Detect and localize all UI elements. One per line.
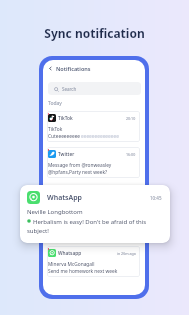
button[interactable]: Back xyxy=(43,60,145,77)
staticText: TikTok xyxy=(48,126,63,133)
staticText: Minerva McGonagall xyxy=(48,261,95,268)
staticText: @hpfans,Party next week? xyxy=(48,169,108,176)
staticText: Today xyxy=(48,100,62,107)
staticText: TikTok xyxy=(58,115,73,122)
staticText: in 26m ago xyxy=(117,251,136,256)
staticText: Whatsapp xyxy=(58,250,82,257)
staticText: 10:45 xyxy=(150,195,162,201)
staticText: WhatsApp xyxy=(47,193,82,203)
staticText: Herbalism is easy! Don't be afraid of th… xyxy=(27,218,161,235)
staticText: Neville Longbottom xyxy=(27,208,83,216)
staticText: 16:00 xyxy=(126,152,136,157)
staticText: Twitter xyxy=(58,151,75,158)
staticText: Notifications xyxy=(56,65,91,72)
button[interactable]: Whatsapp xyxy=(47,246,140,277)
button[interactable]: WhatsApp xyxy=(20,185,170,243)
button[interactable]: Search xyxy=(48,82,141,95)
staticText: Message from @ronweasley xyxy=(48,162,112,169)
staticText: Sync notification xyxy=(0,25,189,41)
staticText: Search xyxy=(62,86,77,92)
button[interactable]: Twitter xyxy=(47,147,140,178)
staticText: eeeeeeeeeeeeee xyxy=(81,133,119,140)
staticText: Send me homework next week xyxy=(48,268,118,275)
staticText: Cuteeeeeeeee xyxy=(48,133,81,140)
other: Back xyxy=(48,66,53,71)
button[interactable]: TikTok xyxy=(47,111,140,142)
staticText: 20:10 xyxy=(126,116,136,121)
